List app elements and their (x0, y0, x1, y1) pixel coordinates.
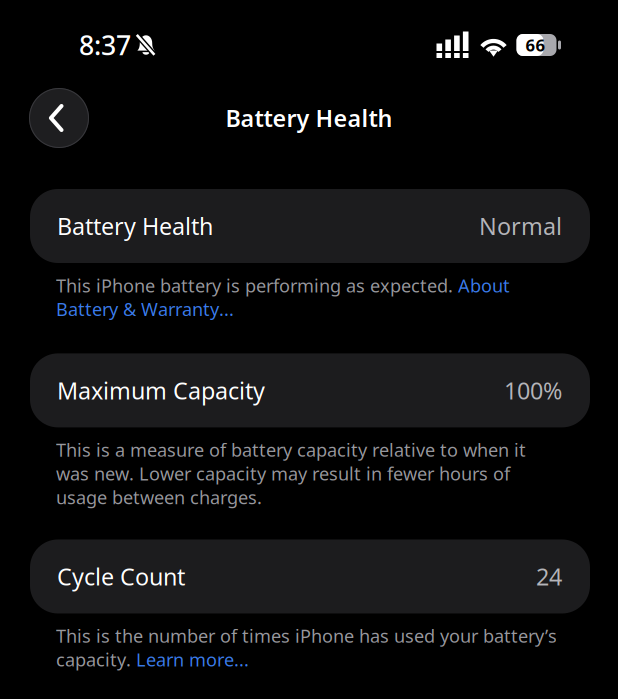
button[interactable]: About (458, 273, 510, 298)
staticText: This is a measure of battery capacity re… (56, 437, 526, 462)
button[interactable]: Maximum Capacity (30, 353, 590, 427)
staticText: capacity. (56, 647, 136, 672)
staticText: Normal (479, 210, 562, 242)
staticText: Learn more... (136, 647, 249, 672)
staticText: 100% (504, 374, 562, 406)
staticText: Battery & Warranty... (56, 297, 234, 321)
button[interactable]: Learn more... (136, 647, 249, 672)
staticText: Maximum Capacity (57, 374, 265, 406)
staticText: usage between charges. (56, 485, 262, 509)
button[interactable]: Cycle Count (30, 539, 590, 613)
staticText: Battery Health (225, 102, 392, 134)
staticText: This iPhone battery is performing as exp… (56, 273, 458, 298)
staticText: This is the number of times iPhone has u… (56, 623, 557, 648)
staticText: About (458, 273, 510, 298)
button[interactable]: Back (29, 88, 89, 148)
staticText: Battery Health (57, 210, 213, 242)
button[interactable]: Battery Health (30, 189, 590, 263)
button[interactable]: Battery & Warranty... (56, 297, 234, 321)
staticText: Cycle Count (57, 561, 185, 592)
staticText: was new. Lower capacity may result in fe… (56, 461, 510, 486)
staticText: 8:37 (79, 27, 131, 63)
staticText: 66 (525, 34, 545, 56)
staticText: 24 (536, 561, 562, 592)
